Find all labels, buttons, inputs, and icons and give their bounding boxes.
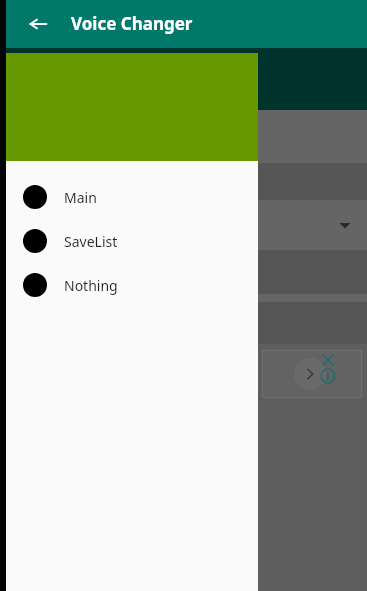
button[interactable]: Dropdown	[337, 217, 353, 233]
button[interactable]: Back	[20, 6, 56, 42]
staticText: Nothing	[64, 276, 118, 295]
staticText: Voice Changer	[71, 12, 193, 35]
staticText: SaveList	[64, 232, 118, 251]
button[interactable]: Advertisement	[262, 350, 362, 398]
staticText: Main	[64, 188, 97, 207]
button[interactable]: SaveList	[6, 219, 258, 263]
button[interactable]: Ad information	[320, 368, 336, 384]
button[interactable]: Close ad	[320, 352, 336, 368]
button[interactable]: Nothing	[6, 263, 258, 307]
button[interactable]: Main	[6, 175, 258, 219]
button[interactable]: Next	[294, 358, 326, 390]
